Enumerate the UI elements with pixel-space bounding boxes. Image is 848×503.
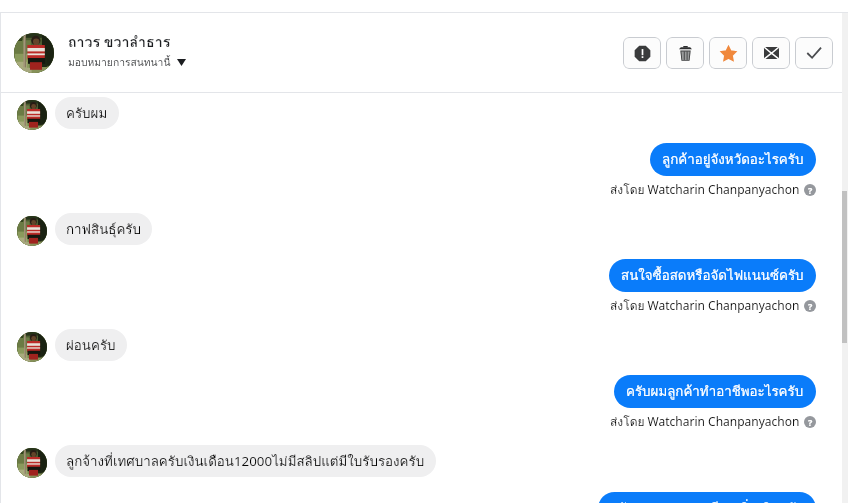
staticText: ลูกค้าอยู่จังหวัดอะไรครับ <box>662 149 804 170</box>
button[interactable]: Done <box>795 37 833 69</box>
staticText: ? <box>808 300 813 312</box>
button[interactable]: ครับผมลูกค้าทำอาชีพอะไรครับ <box>614 375 816 408</box>
staticText: ครับผม <box>66 103 108 124</box>
button[interactable]: ครับผม <box>17 97 848 130</box>
staticText: ? <box>808 184 813 196</box>
staticText: ครับผมขอรายละเอียดเพิ่มเติมครับ <box>610 498 804 503</box>
staticText: มอบหมายการสนทนานี้ <box>68 54 171 70</box>
button[interactable]: สนใจซื้อสดหรือจัดไฟแนนซ์ครับ <box>609 259 816 292</box>
button[interactable]: ครับผมขอรายละเอียดเพิ่มเติมครับ <box>598 492 816 503</box>
button[interactable]: Delete <box>666 37 704 69</box>
button[interactable]: มอบหมายการสนทนานี้ <box>68 54 186 70</box>
button[interactable]: ผ่อนครับ <box>17 329 848 362</box>
button[interactable]: ลูกค้าอยู่จังหวัดอะไรครับ <box>650 143 816 176</box>
staticText: ส่งโดย Watcharin Chanpanyachon <box>610 296 800 315</box>
staticText: ส่งโดย Watcharin Chanpanyachon <box>610 180 800 199</box>
button[interactable]: กาฟสินธุ์ครับ <box>17 213 848 246</box>
staticText: ? <box>808 416 813 428</box>
staticText: ลูกจ้างที่เทศบาลครับเงินเดือน12000ไม่มีส… <box>66 451 425 472</box>
button[interactable]: ลูกจ้างที่เทศบาลครับเงินเดือน12000ไม่มีส… <box>17 445 848 478</box>
staticText: ครับผมลูกค้าทำอาชีพอะไรครับ <box>626 381 804 402</box>
staticText: ผ่อนครับ <box>66 335 116 356</box>
staticText: สนใจซื้อสดหรือจัดไฟแนนซ์ครับ <box>621 265 804 286</box>
staticText: กาฟสินธุ์ครับ <box>66 219 141 240</box>
button[interactable]: Star <box>709 37 747 69</box>
button[interactable]: Mark as unread <box>752 37 790 69</box>
staticText: ส่งโดย Watcharin Chanpanyachon <box>610 412 800 431</box>
staticText: ถาวร ขวาลำธาร <box>68 31 171 54</box>
button[interactable]: Report <box>623 37 661 69</box>
